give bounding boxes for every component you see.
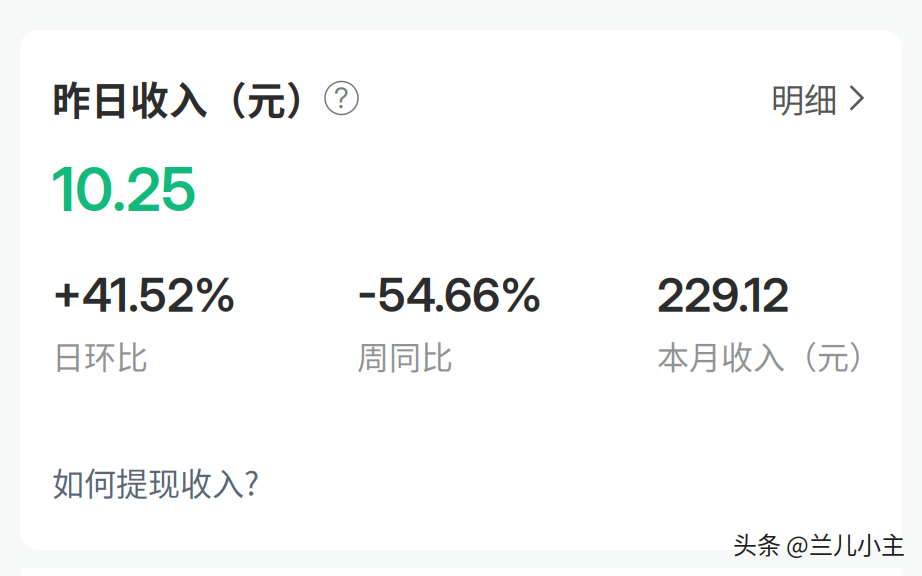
button[interactable]: 收入说明 [325, 81, 358, 114]
staticText: -54.66% [357, 267, 542, 323]
staticText: 如何提现收入? [52, 459, 259, 505]
staticText: 明细 [771, 74, 837, 122]
staticText: ? [334, 81, 349, 115]
button[interactable]: 如何提现收入? [52, 459, 259, 505]
staticText: 本月收入（元） [657, 332, 881, 378]
staticText: +41.52% [52, 267, 236, 323]
staticText: 头条 @兰儿小主 [733, 526, 905, 561]
staticText: 10.25 [52, 153, 196, 226]
staticText: 周同比 [357, 332, 453, 378]
staticText: 昨日收入（元） [52, 70, 325, 126]
staticText: 229.12 [657, 267, 789, 323]
button[interactable]: 明细 [771, 74, 864, 122]
staticText: 日环比 [52, 332, 148, 378]
